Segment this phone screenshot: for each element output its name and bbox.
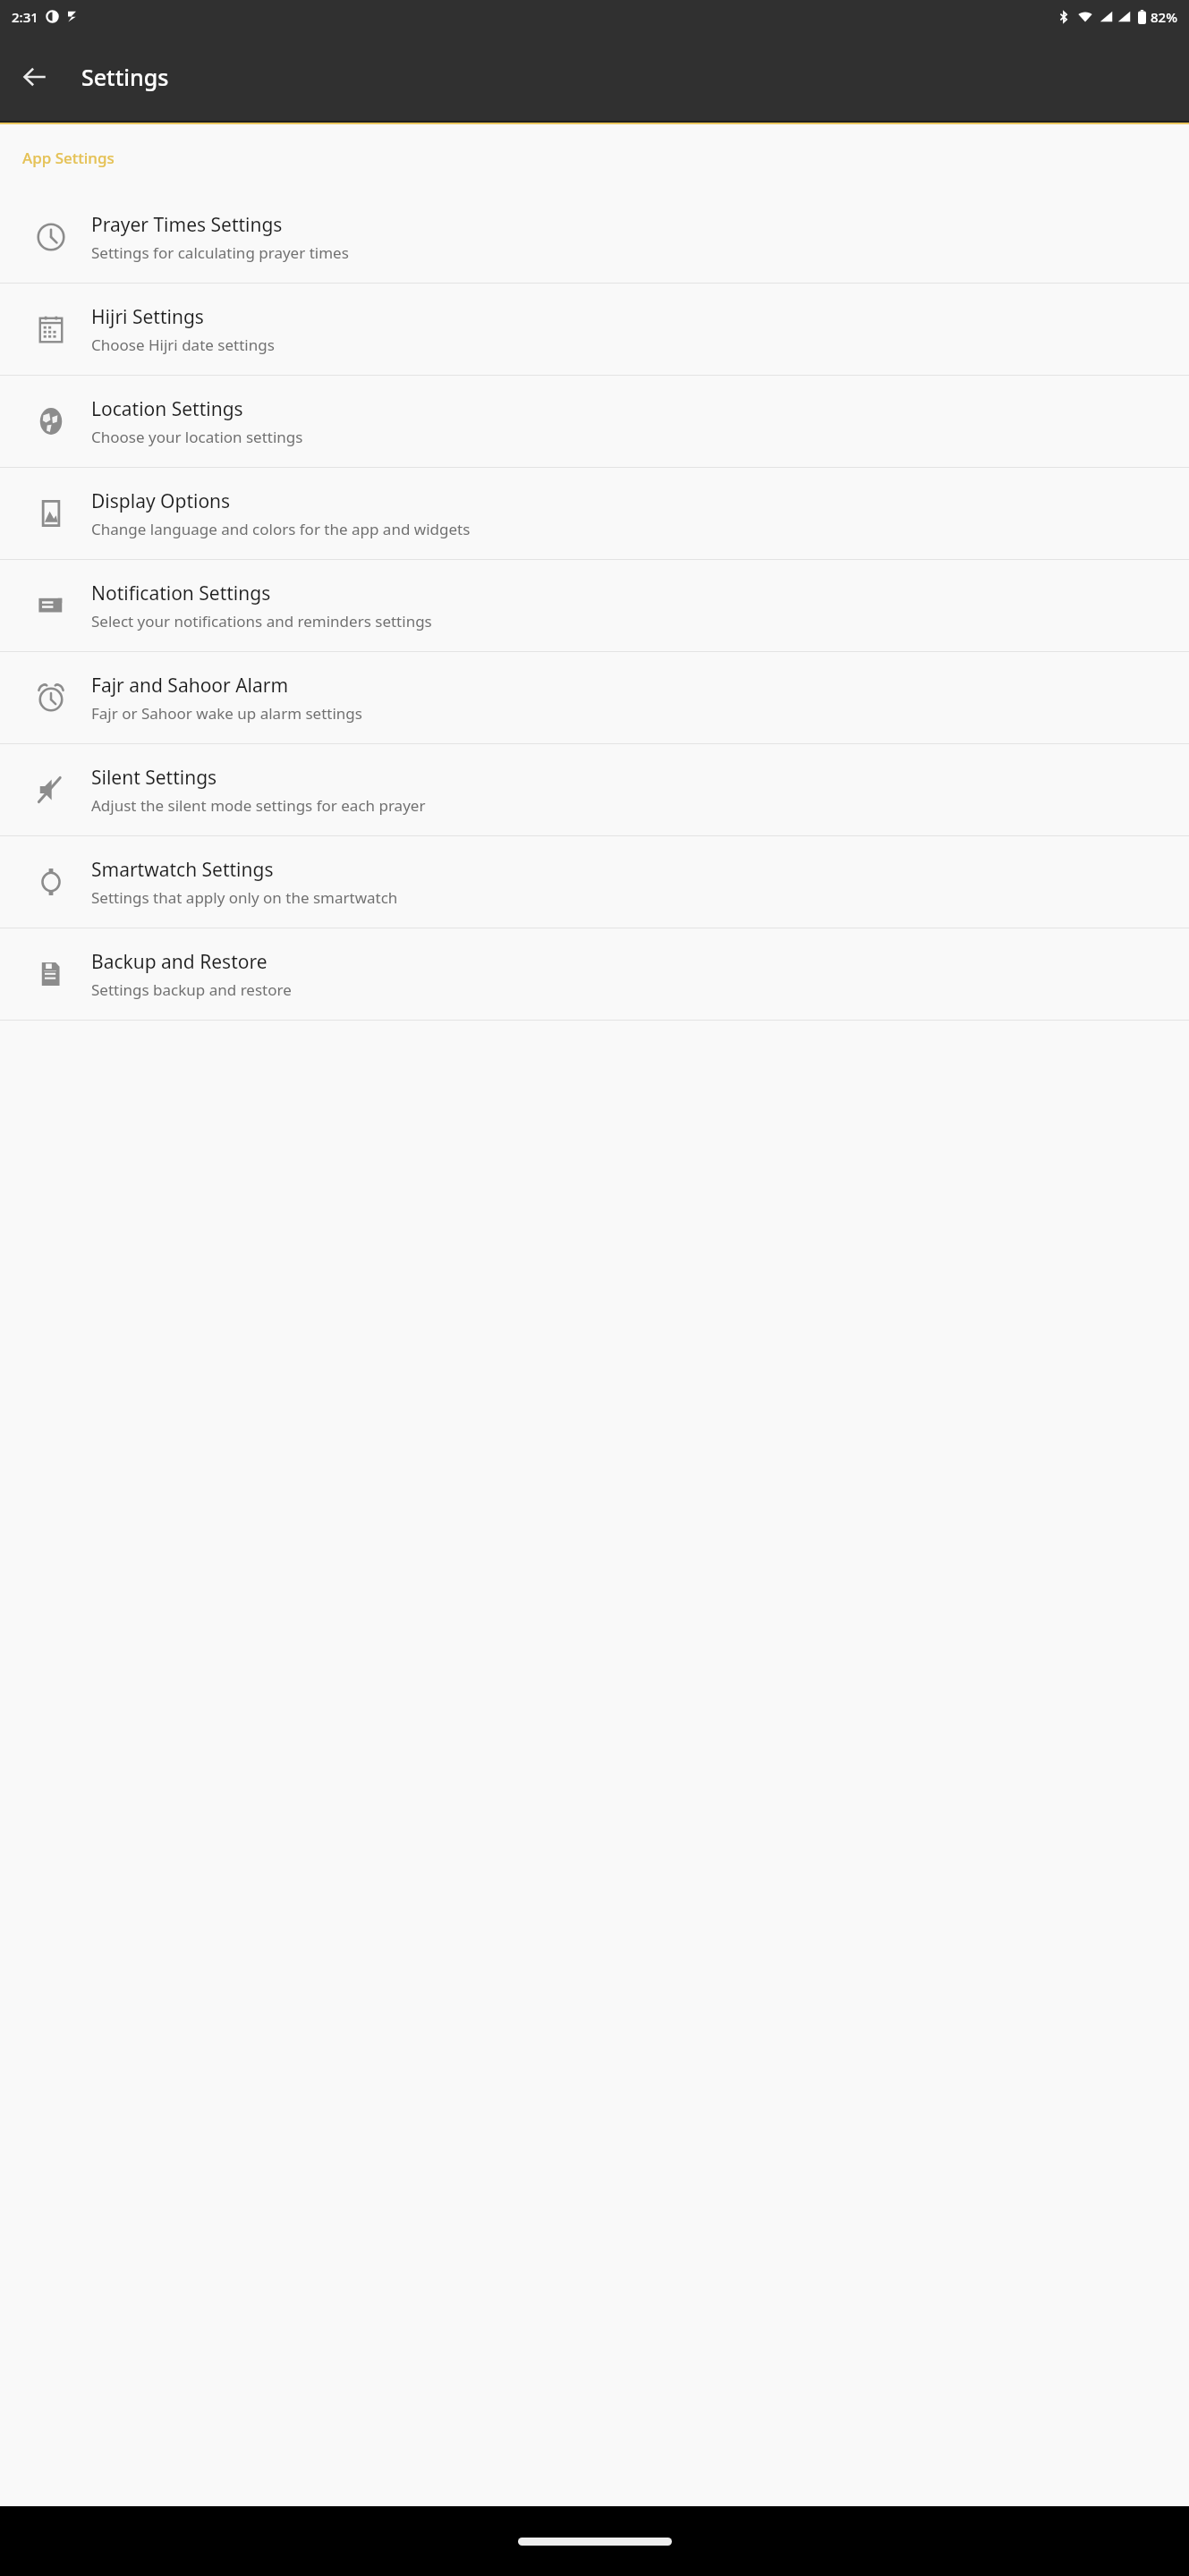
staticText: Settings	[81, 62, 169, 92]
staticText: Fajr and Sahoor Alarm	[91, 673, 289, 699]
button[interactable]: Smartwatch Settings	[0, 836, 1189, 928]
staticText: Backup and Restore	[91, 949, 268, 975]
staticText: Settings for calculating prayer times	[91, 242, 349, 263]
staticText: 2:31	[12, 8, 38, 26]
staticText: Notification Settings	[91, 580, 271, 606]
button[interactable]: Silent Settings	[0, 744, 1189, 835]
staticText: Select your notifications and reminders …	[91, 611, 432, 631]
staticText: Choose Hijri date settings	[91, 335, 275, 355]
staticText: Adjust the silent mode settings for each…	[91, 795, 426, 816]
staticText: Change language and colors for the app a…	[91, 519, 471, 539]
button[interactable]: Location Settings	[0, 376, 1189, 467]
button[interactable]: Fajr and Sahoor Alarm	[0, 652, 1189, 743]
button[interactable]: Display Options	[0, 468, 1189, 559]
button[interactable]: Prayer Times Settings	[0, 191, 1189, 283]
staticText: Location Settings	[91, 396, 243, 422]
button[interactable]: Back	[12, 54, 58, 100]
staticText: Choose your location settings	[91, 427, 303, 447]
button[interactable]: Backup and Restore	[0, 928, 1189, 1020]
staticText: Hijri Settings	[91, 304, 204, 330]
staticText: Silent Settings	[91, 765, 217, 791]
staticText: 82%	[1151, 8, 1177, 26]
staticText: Fajr or Sahoor wake up alarm settings	[91, 703, 362, 724]
staticText: Settings that apply only on the smartwat…	[91, 887, 398, 908]
staticText: Prayer Times Settings	[91, 212, 283, 238]
button[interactable]: Hijri Settings	[0, 284, 1189, 375]
staticText: Smartwatch Settings	[91, 857, 274, 883]
staticText: App Settings	[22, 148, 115, 168]
button[interactable]: Notification Settings	[0, 560, 1189, 651]
staticText: Settings backup and restore	[91, 979, 292, 1000]
staticText: Display Options	[91, 488, 231, 514]
